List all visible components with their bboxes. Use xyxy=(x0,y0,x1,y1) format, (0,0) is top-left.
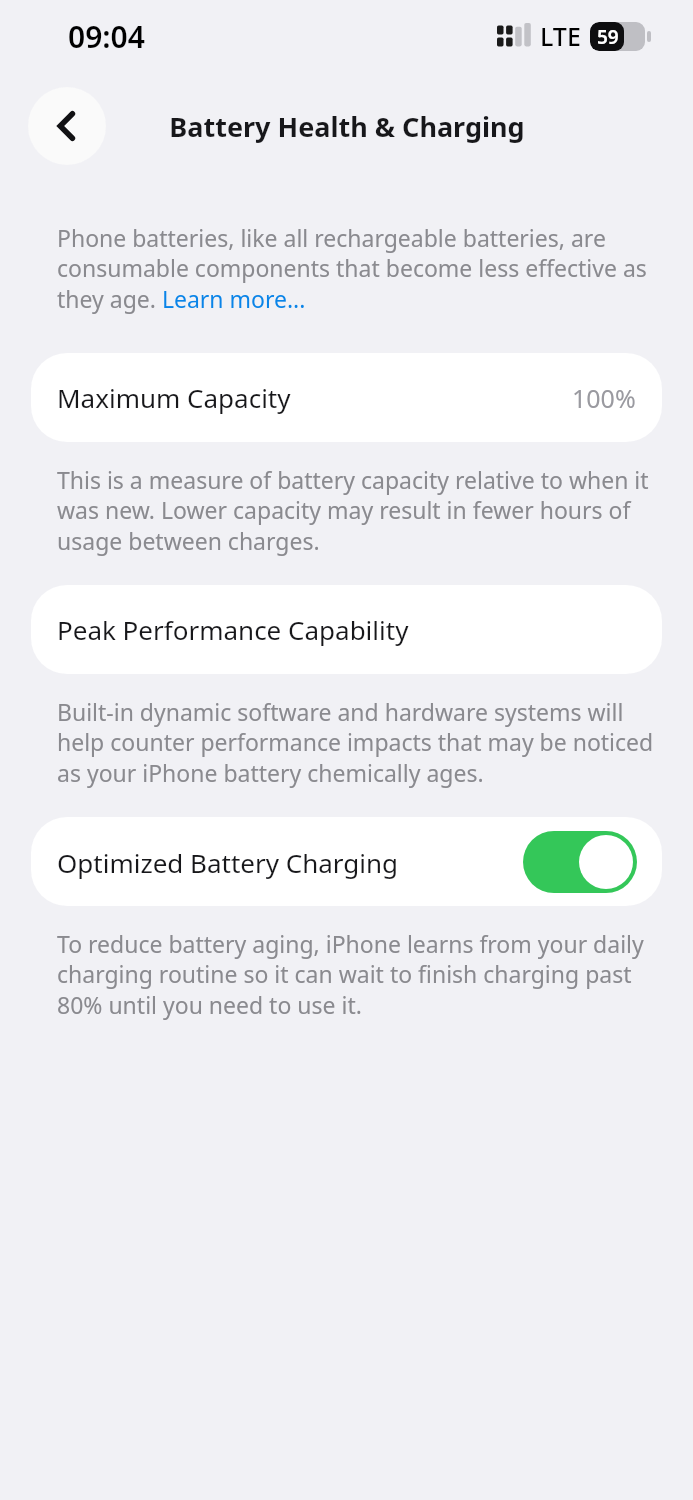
staticText: Phone batteries, like all rechargeable b… xyxy=(57,222,653,315)
staticText: Maximum Capacity xyxy=(57,380,572,415)
staticText: LTE xyxy=(540,19,581,53)
staticText: To reduce battery aging, iPhone learns f… xyxy=(57,928,655,1021)
staticText: 59 xyxy=(597,24,619,50)
staticText: Built-in dynamic software and hardware s… xyxy=(57,696,655,789)
button[interactable]: Optimized Battery Charging toggle xyxy=(523,831,637,893)
staticText: Battery Health & Charging xyxy=(169,108,525,145)
staticText: Peak Performance Capability xyxy=(57,612,636,647)
button[interactable]: Optimized Battery Charging xyxy=(31,817,662,906)
staticText: 09:04 xyxy=(68,16,145,57)
staticText: 100% xyxy=(572,381,636,415)
staticText: This is a measure of battery capacity re… xyxy=(57,464,655,557)
staticText: Optimized Battery Charging xyxy=(57,845,523,880)
button[interactable]: Maximum Capacity xyxy=(31,353,662,442)
button[interactable]: Back xyxy=(28,87,106,165)
button[interactable]: Peak Performance Capability xyxy=(31,585,662,674)
